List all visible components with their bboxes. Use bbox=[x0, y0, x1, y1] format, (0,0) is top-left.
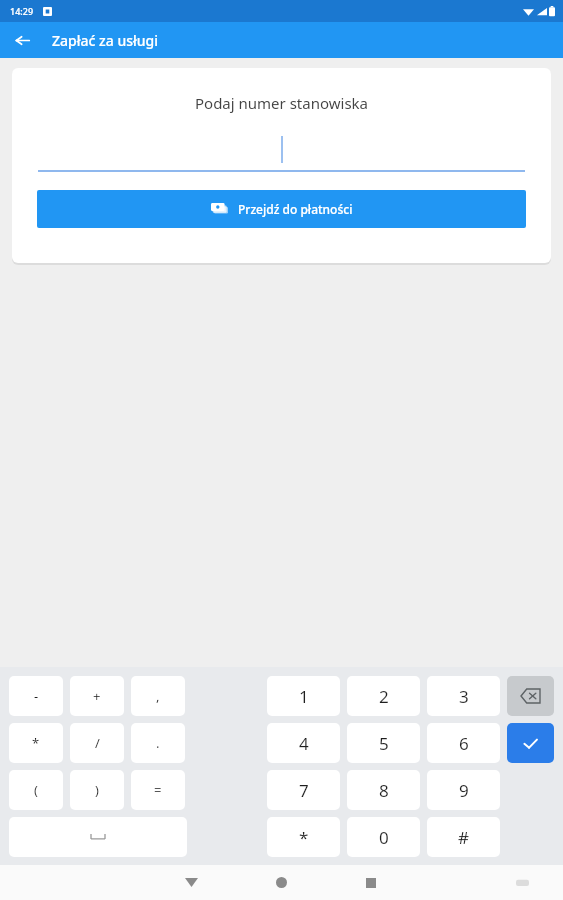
button[interactable]: + bbox=[70, 676, 124, 716]
button[interactable]: Przejdź do płatności bbox=[37, 190, 526, 228]
staticText: 4 bbox=[299, 732, 309, 755]
button[interactable]: 8 bbox=[347, 770, 420, 810]
staticText: Zapłać za usługi bbox=[52, 31, 159, 50]
button[interactable]: 9 bbox=[427, 770, 500, 810]
button[interactable]: 0 bbox=[347, 817, 420, 857]
staticText: 8 bbox=[379, 779, 389, 802]
staticText: Podaj numer stanowiska bbox=[12, 93, 551, 113]
staticText: = bbox=[154, 781, 162, 799]
button[interactable]: , bbox=[131, 676, 185, 716]
staticText: - bbox=[34, 687, 39, 705]
button[interactable]: = bbox=[131, 770, 185, 810]
button[interactable]: Back bbox=[176, 865, 206, 900]
staticText: + bbox=[93, 687, 101, 705]
button[interactable]: 2 bbox=[347, 676, 420, 716]
staticText: 1 bbox=[299, 685, 309, 708]
button[interactable]: Recent apps bbox=[356, 865, 386, 900]
staticText: 6 bbox=[459, 732, 469, 755]
button[interactable]: Numer stanowiska bbox=[38, 132, 525, 172]
staticText: 3 bbox=[459, 685, 469, 708]
staticText: 5 bbox=[379, 732, 389, 755]
button[interactable]: ( bbox=[9, 770, 63, 810]
button[interactable]: . bbox=[131, 723, 185, 763]
button[interactable]: Switch keyboard bbox=[507, 865, 537, 900]
staticText: 0 bbox=[379, 826, 389, 849]
button[interactable]: 3 bbox=[427, 676, 500, 716]
staticText: 2 bbox=[379, 685, 389, 708]
staticText: 9 bbox=[459, 779, 469, 802]
staticText: ( bbox=[34, 781, 38, 799]
button[interactable]: Enter bbox=[507, 723, 554, 763]
staticText: 7 bbox=[299, 779, 309, 802]
staticText: * bbox=[32, 734, 40, 752]
button[interactable]: Home bbox=[266, 865, 296, 900]
staticText: , bbox=[156, 687, 160, 705]
staticText: 14:29 bbox=[10, 5, 34, 17]
button[interactable]: 4 bbox=[267, 723, 340, 763]
button[interactable]: ) bbox=[70, 770, 124, 810]
button[interactable]: Back bbox=[8, 26, 36, 54]
button[interactable]: 1 bbox=[267, 676, 340, 716]
button[interactable]: * bbox=[267, 817, 340, 857]
button[interactable]: 5 bbox=[347, 723, 420, 763]
button[interactable]: - bbox=[9, 676, 63, 716]
staticText: . bbox=[156, 734, 160, 752]
button[interactable]: # bbox=[427, 817, 500, 857]
staticText: Przejdź do płatności bbox=[238, 201, 353, 217]
button[interactable]: 6 bbox=[427, 723, 500, 763]
button[interactable]: Space bbox=[9, 817, 187, 857]
button[interactable]: 7 bbox=[267, 770, 340, 810]
staticText: / bbox=[95, 734, 100, 752]
button[interactable]: * bbox=[9, 723, 63, 763]
staticText: # bbox=[458, 826, 469, 849]
staticText: ) bbox=[95, 781, 99, 799]
button[interactable]: / bbox=[70, 723, 124, 763]
staticText: * bbox=[299, 826, 309, 849]
button[interactable]: Backspace bbox=[507, 676, 554, 716]
